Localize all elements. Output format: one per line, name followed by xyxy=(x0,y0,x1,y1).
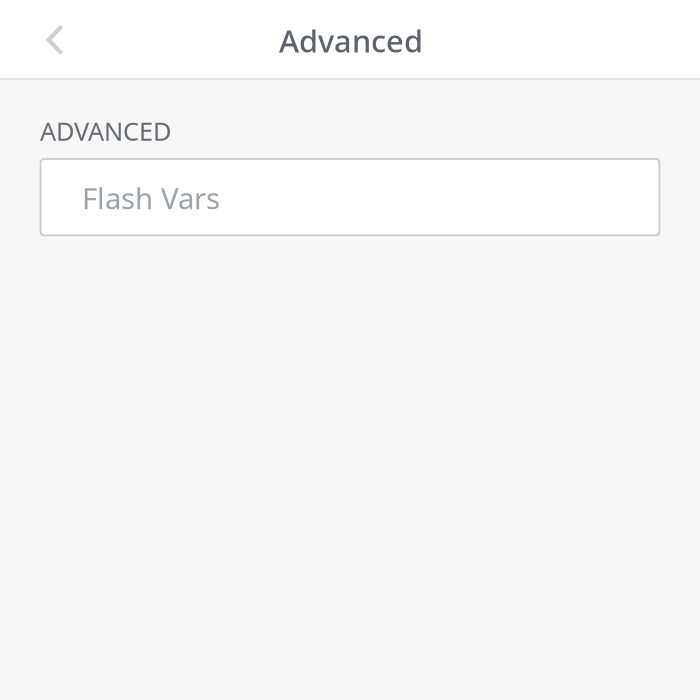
staticText: Advanced xyxy=(279,20,423,61)
button[interactable]: Flash Vars xyxy=(41,159,659,235)
button[interactable]: Back xyxy=(0,0,92,78)
staticText: ADVANCED xyxy=(40,114,171,148)
staticText: Flash Vars xyxy=(82,178,220,217)
